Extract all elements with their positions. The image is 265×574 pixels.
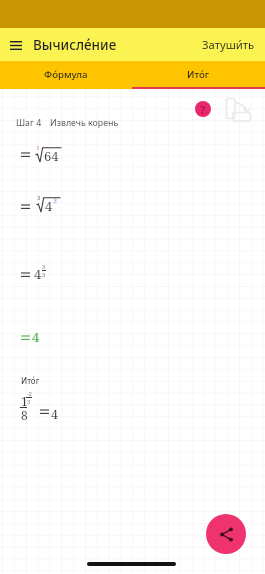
button[interactable]: Copy xyxy=(224,96,252,123)
staticText: Затуши́ть xyxy=(202,37,255,52)
staticText: 4 xyxy=(34,265,42,283)
staticText: Вычисле́ние xyxy=(33,36,117,54)
button[interactable]: Ито́г xyxy=(132,61,265,89)
staticText: Фо́рмула xyxy=(44,68,88,81)
staticText: 64 xyxy=(44,147,59,165)
button[interactable]: Фо́рмула xyxy=(0,61,132,89)
staticText: 4 xyxy=(45,197,53,215)
button[interactable]: Open navigation menu xyxy=(4,33,28,57)
staticText: Ито́г xyxy=(21,375,40,386)
staticText: 3 xyxy=(37,194,41,202)
staticText: Извлечь корень xyxy=(50,117,119,129)
button[interactable]: Help xyxy=(195,101,211,117)
staticText: Ито́г xyxy=(187,68,210,81)
button[interactable]: Share xyxy=(206,514,246,554)
staticText: 8 xyxy=(21,407,28,423)
staticText: 3 xyxy=(53,196,57,206)
staticText: 4 xyxy=(51,406,58,423)
staticText: -2 xyxy=(27,390,32,397)
staticText: 4 xyxy=(32,328,40,346)
staticText: 3 xyxy=(27,398,31,405)
staticText: 3 xyxy=(42,263,46,270)
staticText: Шаг 4 xyxy=(16,117,42,129)
staticText: ? xyxy=(200,102,206,117)
staticText: 1 xyxy=(21,393,28,409)
staticText: 3 xyxy=(36,144,40,152)
staticText: 3 xyxy=(42,271,46,278)
button[interactable]: Затуши́ть xyxy=(192,31,265,58)
